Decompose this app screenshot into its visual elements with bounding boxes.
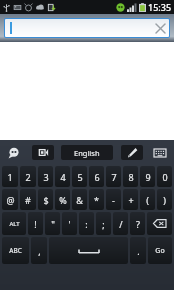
button[interactable]: @ (2, 189, 18, 210)
staticText: ( (146, 194, 149, 206)
button[interactable]: English (61, 145, 113, 160)
button[interactable]: * (89, 189, 104, 210)
staticText: 2 (25, 171, 31, 183)
button[interactable]: 7 (106, 166, 121, 187)
staticText: & (76, 194, 83, 206)
button[interactable]: % (55, 189, 70, 210)
staticText: Go (155, 246, 165, 256)
staticText: English (74, 148, 100, 158)
button[interactable]: / (113, 212, 128, 235)
button[interactable]: ALT (2, 212, 26, 235)
button[interactable]: 5 (72, 166, 87, 187)
staticText: ! (34, 218, 37, 230)
staticText: @ (6, 194, 15, 206)
button[interactable]: 9 (140, 166, 155, 187)
staticText: 7 (111, 171, 117, 183)
button[interactable]: 3 (38, 166, 53, 187)
button[interactable]: # (20, 189, 36, 210)
staticText: 0 (162, 171, 168, 183)
staticText: . (137, 245, 140, 257)
button[interactable]: ABC (2, 237, 29, 264)
button[interactable]: - (106, 189, 121, 210)
staticText: " (51, 218, 55, 230)
button[interactable]: Emoji (4, 145, 24, 161)
staticText: # (25, 194, 31, 206)
staticText: $ (43, 194, 49, 206)
staticText: ALT (9, 220, 20, 228)
staticText: % (59, 194, 67, 206)
button[interactable]: 4 (55, 166, 70, 187)
staticText: * (94, 194, 99, 206)
button[interactable]: ' (62, 212, 77, 235)
button[interactable]: $ (38, 189, 53, 210)
button[interactable]: Voice input (32, 145, 54, 160)
staticText: 6 (94, 171, 100, 183)
button[interactable]: Clear text (151, 19, 169, 37)
staticText: / (119, 218, 123, 230)
button[interactable]: Keyboard settings (150, 145, 170, 161)
button[interactable]: Go (148, 237, 172, 264)
button[interactable]: " (45, 212, 60, 235)
button[interactable]: Backspace (147, 212, 172, 235)
staticText: 5 (77, 171, 83, 183)
button[interactable]: : (79, 212, 94, 235)
staticText: ABC (9, 246, 22, 255)
button[interactable]: ! (28, 212, 43, 235)
button[interactable]: 2 (20, 166, 36, 187)
staticText: ) (163, 194, 166, 206)
button[interactable]: Handwriting (121, 145, 143, 160)
button[interactable]: 8 (123, 166, 138, 187)
staticText: 9 (145, 171, 151, 183)
button[interactable]: + (123, 189, 138, 210)
button[interactable]: Clear text (5, 19, 169, 37)
button[interactable]: ? (130, 212, 145, 235)
button[interactable]: 1 (2, 166, 18, 187)
staticText: 8 (128, 171, 134, 183)
button[interactable]: ( (140, 189, 155, 210)
staticText: 3 (43, 171, 49, 183)
staticText: 15:35 (148, 1, 172, 13)
staticText: 4 (60, 171, 66, 183)
button[interactable]: Space (49, 237, 128, 264)
staticText: ; (102, 218, 105, 230)
staticText: + (128, 194, 134, 206)
button[interactable]: 0 (157, 166, 172, 187)
button[interactable]: 6 (89, 166, 104, 187)
button[interactable]: ; (96, 212, 111, 235)
staticText: - (112, 194, 115, 206)
staticText: , (38, 245, 41, 257)
button[interactable]: & (72, 189, 87, 210)
staticText: 1 (7, 171, 13, 183)
staticText: ' (68, 218, 71, 230)
button[interactable]: . (130, 237, 146, 264)
staticText: ? (136, 218, 140, 230)
staticText: : (85, 218, 88, 230)
button[interactable]: , (31, 237, 47, 264)
button[interactable]: ) (157, 189, 172, 210)
